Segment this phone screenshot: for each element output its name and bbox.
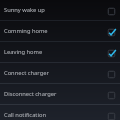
button[interactable]: Sunny wake up xyxy=(0,0,120,21)
staticText: Leaving home xyxy=(4,48,106,56)
other: Checked xyxy=(106,48,117,59)
button[interactable]: Comming home xyxy=(0,21,120,42)
staticText: Comming home xyxy=(4,27,106,35)
other: Unchecked xyxy=(106,111,117,120)
button[interactable]: Leaving home xyxy=(0,42,120,63)
other: Checked xyxy=(106,27,117,38)
button[interactable]: Disconnect charger xyxy=(0,84,120,105)
staticText: Connect charger xyxy=(4,69,106,77)
other: Unchecked xyxy=(106,6,117,17)
other: Unchecked xyxy=(106,90,117,101)
staticText: Call notification xyxy=(4,111,106,119)
button[interactable]: Connect charger xyxy=(0,63,120,84)
button[interactable]: Call notification xyxy=(0,105,120,120)
other: Unchecked xyxy=(106,69,117,80)
staticText: Disconnect charger xyxy=(4,90,106,98)
staticText: Sunny wake up xyxy=(4,6,106,14)
